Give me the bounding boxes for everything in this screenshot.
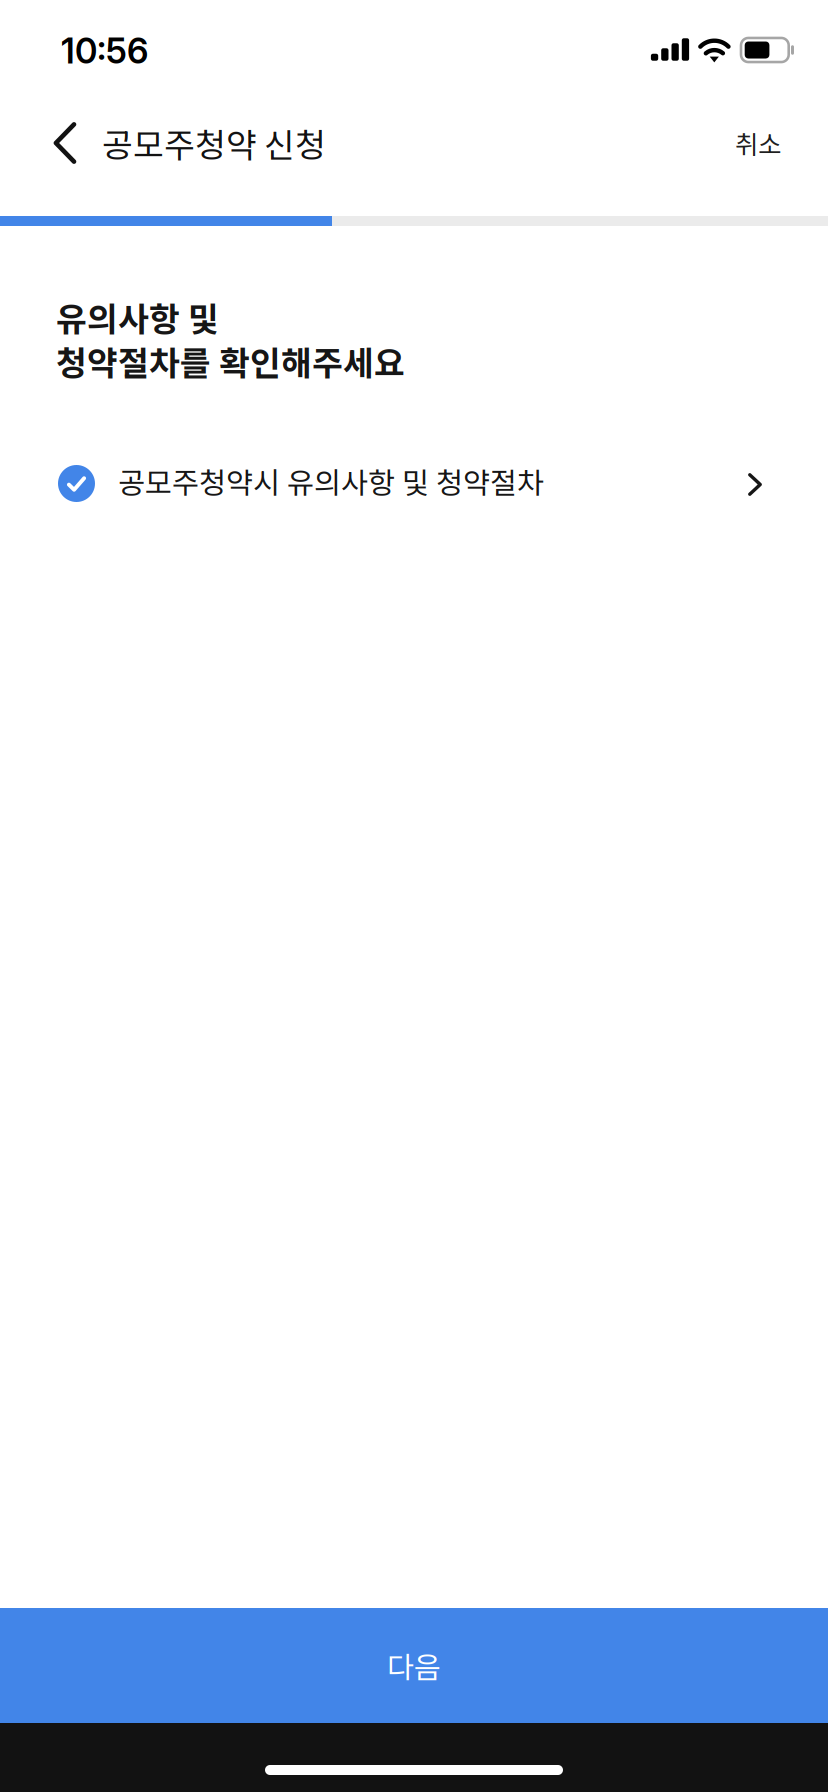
staticText: 다음 bbox=[387, 1644, 441, 1687]
staticText: 공모주청약시 유의사항 및 청약절차 bbox=[118, 460, 544, 502]
button[interactable]: 다음 bbox=[0, 1608, 828, 1723]
staticText: 청약절차를 확인해주세요 bbox=[56, 337, 405, 385]
button[interactable]: 공모주청약시 유의사항 및 청약절차 bbox=[56, 455, 762, 507]
staticText: 유의사항 및 bbox=[56, 293, 219, 341]
staticText: 10:56 bbox=[61, 30, 148, 72]
button[interactable]: Back bbox=[37, 105, 93, 181]
staticText: 취소 bbox=[735, 125, 781, 161]
staticText: 공모주청약 신청 bbox=[102, 119, 326, 167]
button[interactable]: 취소 bbox=[711, 105, 805, 181]
